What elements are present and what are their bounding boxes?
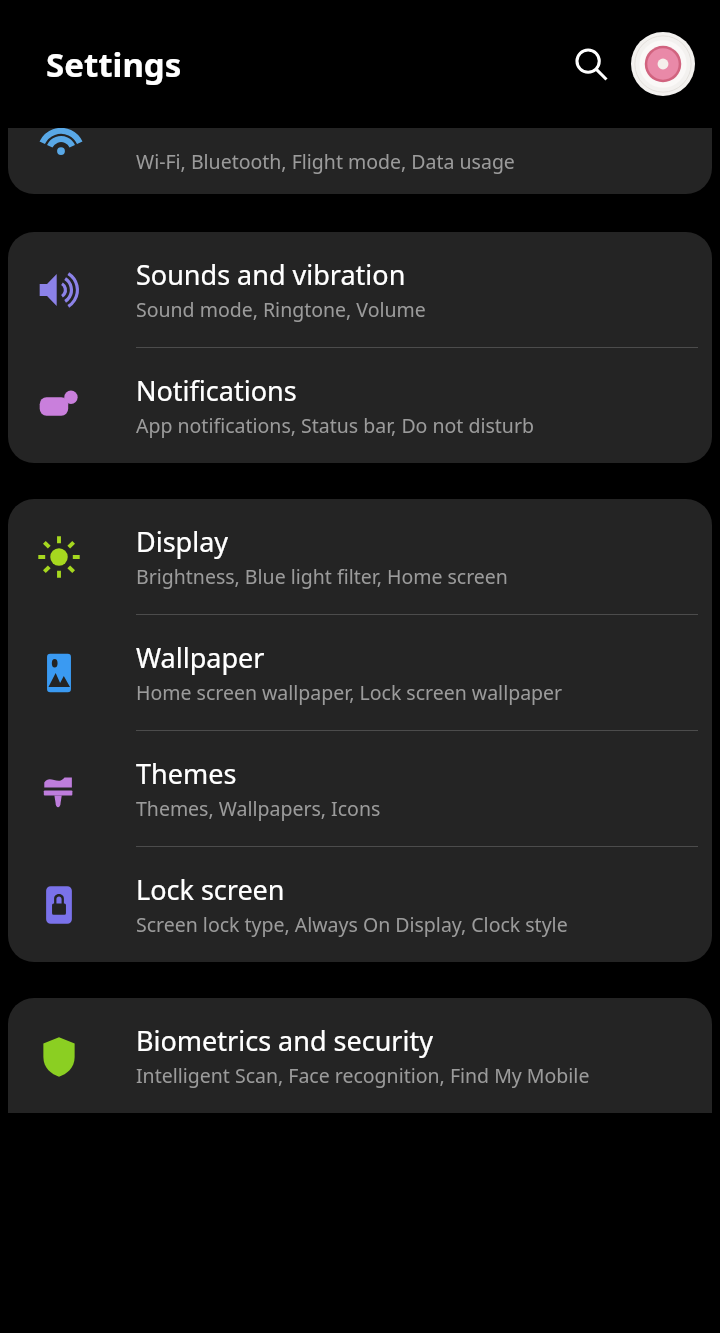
button[interactable]: Themes [8,731,712,846]
button[interactable]: Biometrics and security [8,998,712,1113]
staticText: Home screen wallpaper, Lock screen wallp… [136,679,563,706]
staticText: Display [136,523,229,560]
staticText: Intelligent Scan, Face recognition, Find… [136,1062,590,1089]
button[interactable]: Notifications [8,348,712,463]
button[interactable]: Search [562,35,620,93]
staticText: Wallpaper [136,639,265,676]
staticText: Sound mode, Ringtone, Volume [136,296,426,323]
staticText: Brightness, Blue light filter, Home scre… [136,563,508,590]
staticText: Settings [46,42,182,87]
staticText: Themes, Wallpapers, Icons [136,795,381,822]
staticText: Lock screen [136,871,285,908]
staticText: Sounds and vibration [136,256,406,293]
button[interactable]: Account profile [630,31,696,97]
staticText: Wi-Fi, Bluetooth, Flight mode, Data usag… [136,148,515,175]
button[interactable]: Wallpaper [8,615,712,730]
button[interactable]: Display [8,499,712,614]
button[interactable]: Sounds and vibration [8,232,712,347]
staticText: Themes [136,755,237,792]
button[interactable]: Lock screen [8,847,712,962]
staticText: App notifications, Status bar, Do not di… [136,412,534,439]
staticText: Notifications [136,372,297,409]
staticText: Screen lock type, Always On Display, Clo… [136,911,568,938]
staticText: Biometrics and security [136,1022,433,1059]
button[interactable]: Wi-Fi, Bluetooth, Flight mode, Data usag… [8,128,712,194]
